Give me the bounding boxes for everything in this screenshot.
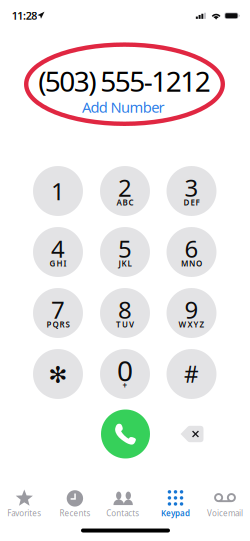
button[interactable]: Contacts [98, 476, 148, 524]
button[interactable]: 4 [33, 227, 83, 277]
staticText: + [122, 380, 127, 391]
staticText: Keypad [161, 508, 190, 518]
staticText: 0 [117, 352, 133, 389]
button[interactable]: 5 [100, 227, 150, 277]
button[interactable]: ✻ [33, 349, 83, 399]
staticText: 5 [118, 233, 132, 264]
button[interactable]: # [166, 349, 216, 399]
button[interactable]: Voicemail [200, 476, 250, 524]
staticText: (503) 555-1212 [38, 62, 211, 99]
staticText: 6 [184, 233, 198, 264]
staticText: 3 [184, 172, 198, 203]
button[interactable]: 9 [166, 288, 216, 338]
button[interactable]: 1 [33, 166, 83, 216]
staticText: 4 [51, 233, 65, 264]
button[interactable]: 0 [100, 349, 150, 399]
staticText: 9 [184, 294, 198, 325]
button[interactable]: Recents [50, 476, 100, 524]
staticText: 7 [51, 294, 65, 325]
button[interactable]: 7 [33, 288, 83, 338]
button[interactable]: Add Number [74, 94, 173, 120]
staticText: 1 [51, 175, 65, 207]
button[interactable]: Delete [170, 412, 214, 456]
staticText: 11:28 [12, 8, 37, 23]
staticText: G H I [49, 258, 66, 269]
button[interactable]: 8 [100, 288, 150, 338]
button[interactable]: Call [101, 409, 150, 458]
staticText: 2 [118, 172, 132, 203]
staticText: J K L [118, 258, 131, 269]
staticText: W X Y Z [178, 319, 204, 330]
staticText: ✻ [48, 362, 67, 388]
staticText: D E F [183, 197, 199, 208]
staticText: Add Number [82, 97, 165, 117]
staticText: M N O [181, 258, 202, 269]
staticText: Contacts [106, 508, 139, 518]
button[interactable]: Keypad [150, 476, 200, 524]
button[interactable]: 3 [166, 166, 216, 216]
staticText: A B C [116, 197, 133, 208]
staticText: Voicemail [207, 508, 243, 518]
staticText: # [184, 359, 199, 389]
button[interactable]: 2 [100, 166, 150, 216]
staticText: Recents [59, 508, 90, 518]
staticText: Favorites [7, 508, 41, 518]
button[interactable]: 6 [166, 227, 216, 277]
staticText: T U V [116, 319, 134, 330]
staticText: 8 [118, 294, 132, 325]
button[interactable]: Favorites [0, 476, 49, 524]
staticText: P Q R S [46, 319, 69, 330]
